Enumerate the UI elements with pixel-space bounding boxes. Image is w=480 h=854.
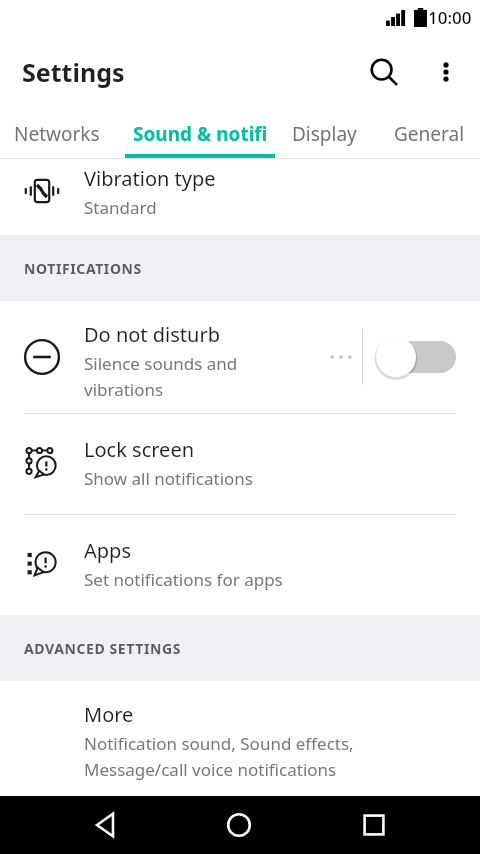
button[interactable]: Vibration type [0, 159, 480, 235]
button[interactable]: Recents [345, 796, 403, 854]
staticText: General [394, 121, 465, 147]
staticText: Show all notifications [84, 467, 253, 490]
button[interactable]: Lock screen [0, 414, 480, 514]
button[interactable]: Sound & notifi [133, 110, 268, 158]
staticText: Notification sound, Sound effects, [84, 732, 354, 755]
staticText: Display [292, 121, 357, 147]
button[interactable]: More options [422, 48, 470, 96]
staticText: Sound & notifi [133, 121, 268, 147]
staticText: Standard [84, 196, 157, 219]
staticText: vibrations [84, 378, 164, 401]
button[interactable]: General [394, 110, 465, 158]
button[interactable]: Display [292, 110, 357, 158]
staticText: More [84, 701, 134, 728]
staticText: Apps [84, 537, 131, 564]
button[interactable]: Networks [14, 110, 100, 158]
staticText: Settings [22, 55, 125, 89]
button[interactable]: Home [210, 796, 268, 854]
button[interactable]: More [0, 681, 480, 811]
staticText: Lock screen [84, 436, 195, 463]
staticText: Silence sounds and [84, 352, 238, 375]
staticText: Do not disturb [84, 321, 220, 348]
button[interactable]: Apps [0, 515, 480, 615]
staticText: Vibration type [84, 165, 216, 192]
button[interactable]: Search [358, 46, 410, 98]
button[interactable]: Back [76, 796, 134, 854]
staticText: Set notifications for apps [84, 568, 283, 591]
staticText: 10:00 [428, 6, 472, 29]
staticText: Message/call voice notifications [84, 758, 337, 781]
button[interactable]: Do not disturb toggle [374, 333, 458, 381]
staticText: Networks [14, 121, 100, 147]
staticText: ADVANCED SETTINGS [24, 639, 181, 658]
button[interactable]: Do not disturb [0, 301, 480, 413]
staticText: NOTIFICATIONS [24, 259, 142, 278]
